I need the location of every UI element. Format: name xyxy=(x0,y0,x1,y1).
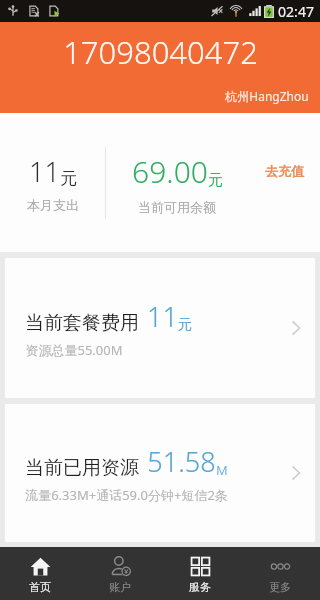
button[interactable]: 首页 xyxy=(0,547,80,600)
staticText: 去充值 xyxy=(265,163,304,179)
staticText: 更多 xyxy=(269,580,291,594)
button[interactable]: 更多 xyxy=(240,547,320,600)
staticText: 首页 xyxy=(29,580,51,594)
staticText: 服务 xyxy=(189,580,211,594)
other: 当前已用资源 xyxy=(291,464,301,482)
staticText: 17098040472 xyxy=(63,31,258,73)
staticText: 69.00 xyxy=(132,151,208,192)
staticText: 流量6.33M+通话59.0分钟+短信2条 xyxy=(25,486,228,504)
button[interactable]: 当前已用资源 xyxy=(5,404,315,542)
staticText: 51.58 xyxy=(147,443,216,480)
button[interactable]: 69.00 xyxy=(106,151,248,215)
staticText: 11 xyxy=(29,153,60,190)
staticText: 当前套餐费用 xyxy=(25,311,139,335)
staticText: 元 xyxy=(60,168,77,189)
staticText: 资源总量55.00M xyxy=(25,341,123,359)
button[interactable]: 11 xyxy=(0,153,105,213)
staticText: 当前可用余额 xyxy=(138,199,216,215)
button[interactable]: 账户 xyxy=(80,547,160,600)
button[interactable]: 服务 xyxy=(160,547,240,600)
button[interactable]: 去充值 xyxy=(248,113,320,252)
staticText: 02:47 xyxy=(278,2,314,21)
other: 当前套餐费用 xyxy=(291,319,301,337)
staticText: 杭州HangZhou xyxy=(225,88,309,104)
staticText: M xyxy=(216,461,228,479)
staticText: 元 xyxy=(208,171,223,190)
staticText: 元 xyxy=(178,316,192,334)
staticText: 当前已用资源 xyxy=(25,456,139,480)
staticText: 11 xyxy=(147,298,178,335)
button[interactable]: 当前套餐费用 xyxy=(5,258,315,398)
staticText: 本月支出 xyxy=(27,197,79,213)
staticText: 账户 xyxy=(109,580,131,594)
